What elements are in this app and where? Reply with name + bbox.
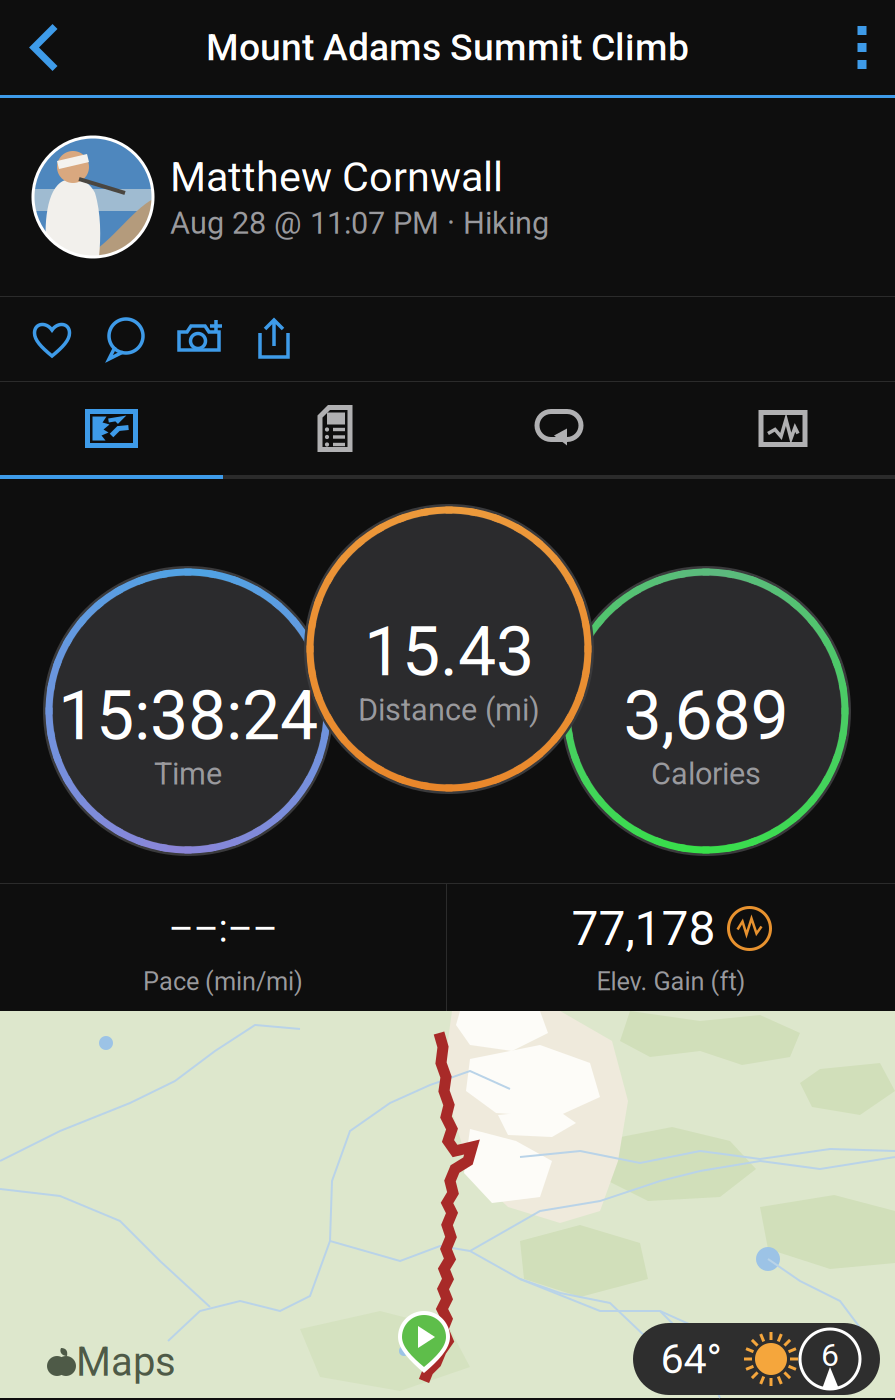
button[interactable]: More options bbox=[829, 0, 895, 95]
staticText: Maps bbox=[76, 1339, 176, 1385]
button[interactable]: Summary bbox=[223, 382, 447, 475]
button[interactable]: Charts bbox=[671, 382, 895, 475]
staticText: 77,178 bbox=[571, 900, 715, 957]
staticText: Calories bbox=[651, 756, 761, 792]
button[interactable]: Laps bbox=[447, 382, 671, 475]
staticText: 3,689 bbox=[623, 676, 788, 756]
staticText: Mount Adams Summit Climb bbox=[206, 26, 689, 69]
button[interactable]: Share bbox=[237, 297, 311, 381]
staticText: ––:–– bbox=[168, 906, 277, 951]
staticText: Distance (mi) bbox=[358, 692, 540, 728]
staticText: 15:38:24 bbox=[58, 676, 318, 756]
staticText: Matthew Cornwall bbox=[170, 153, 503, 201]
button[interactable]: Map bbox=[0, 382, 223, 475]
button[interactable]: Comment bbox=[89, 297, 163, 381]
staticText: 64° bbox=[660, 1335, 721, 1383]
button[interactable]: Back bbox=[0, 0, 90, 95]
staticText: Time bbox=[154, 756, 222, 792]
button[interactable]: Like bbox=[15, 297, 89, 381]
staticText: 15.43 bbox=[364, 612, 534, 692]
button[interactable]: Add photo bbox=[163, 297, 237, 381]
staticText: Elev. Gain (ft) bbox=[596, 967, 745, 996]
staticText: Pace (min/mi) bbox=[143, 967, 303, 996]
staticText: Aug 28 @ 11:07 PM · Hiking bbox=[170, 205, 549, 241]
staticText: 6 bbox=[821, 1336, 839, 1374]
